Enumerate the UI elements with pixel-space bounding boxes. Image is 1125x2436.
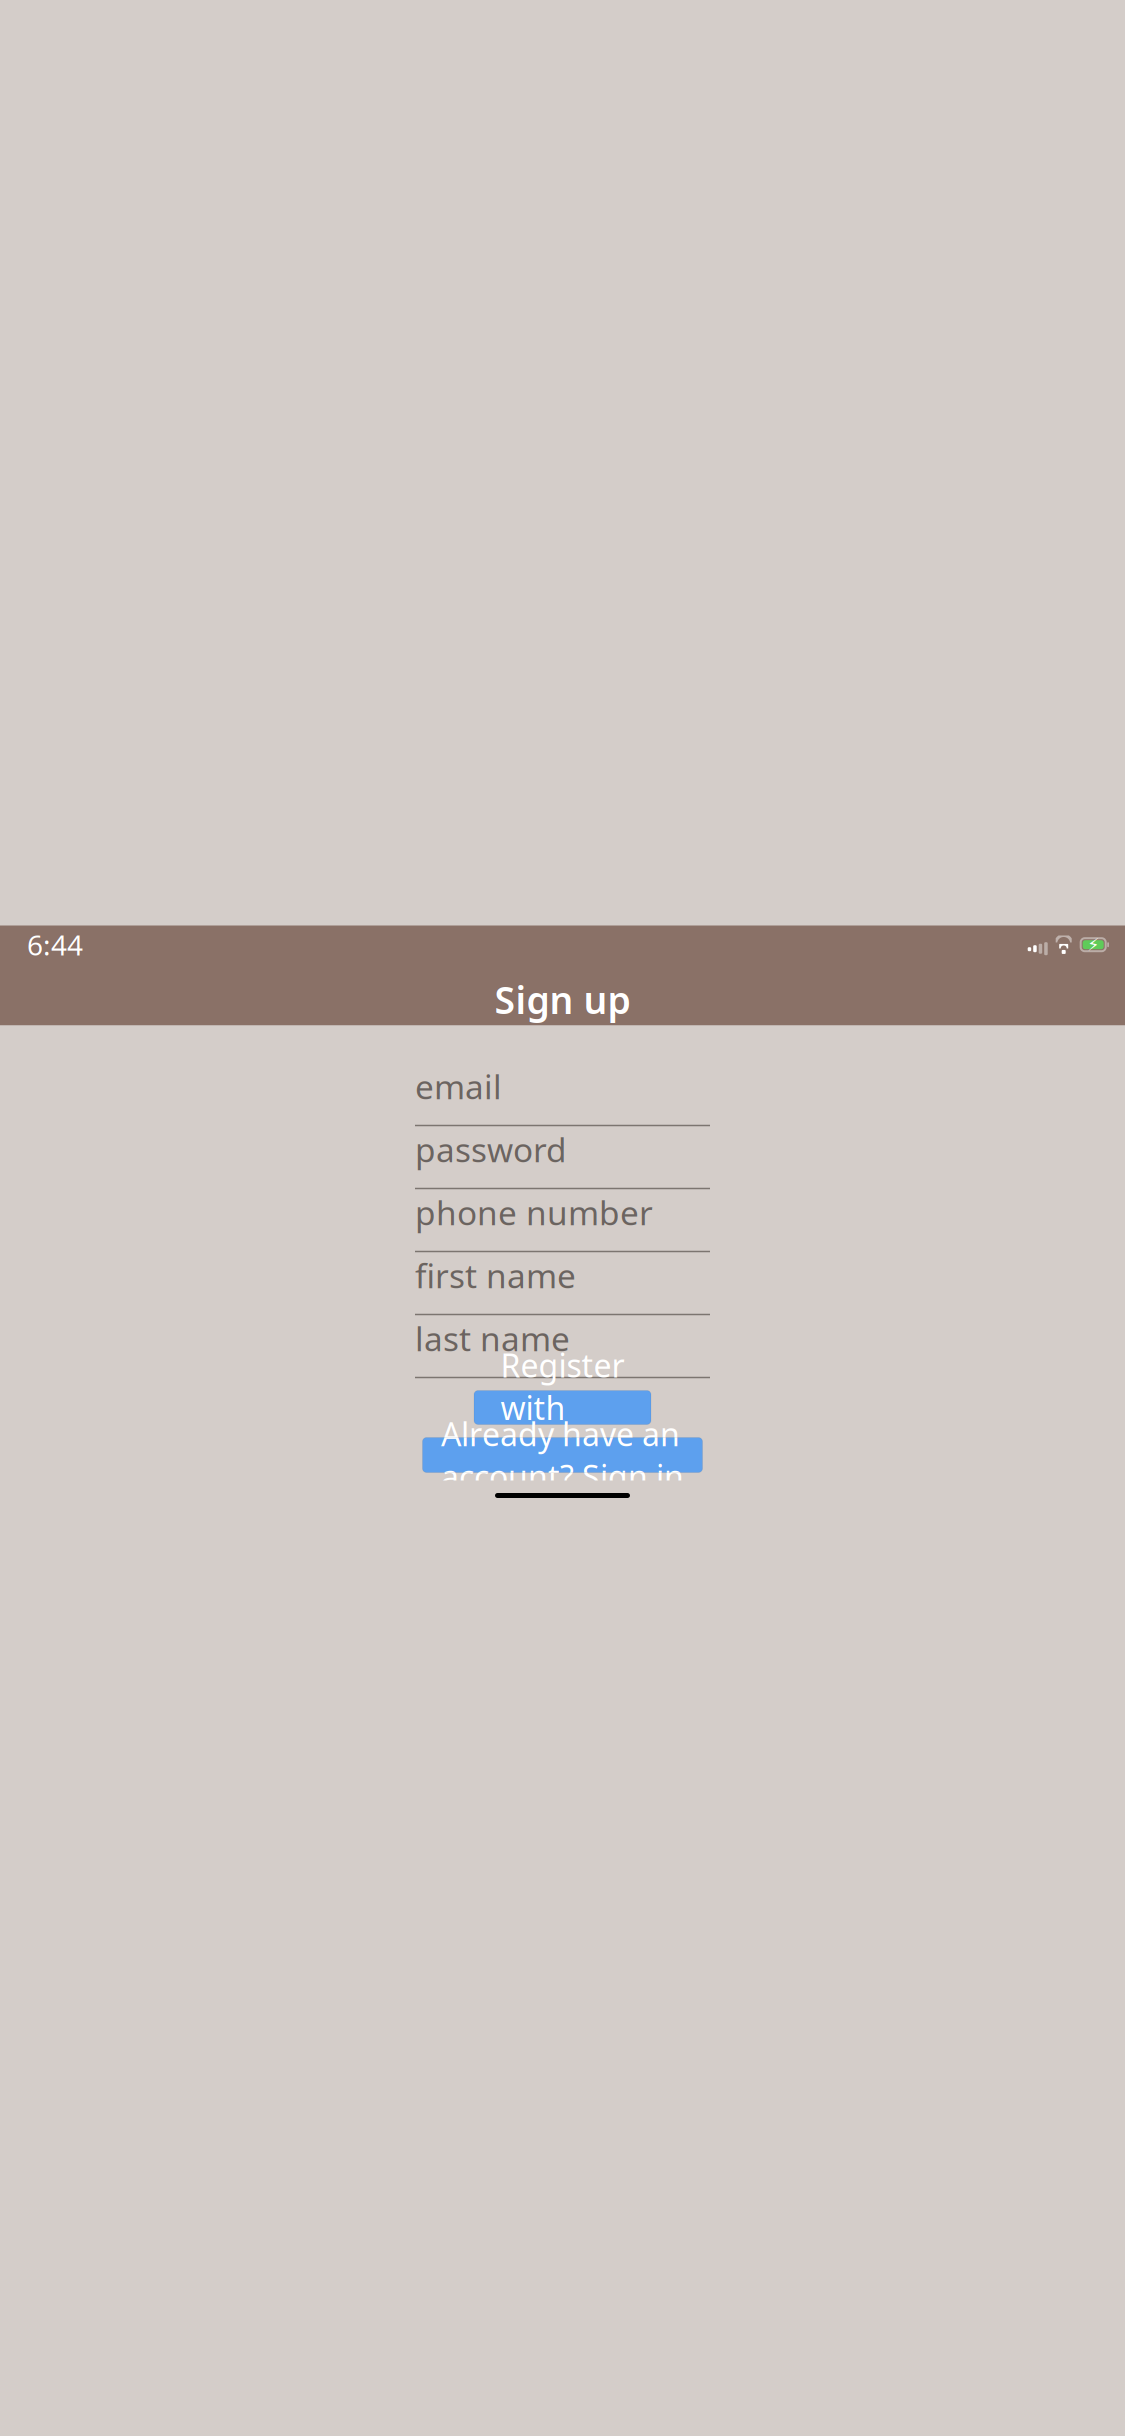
staticText: phone number [415,1190,653,1234]
button[interactable]: Already have an account? Sign in [422,1437,702,1472]
staticText: 6:44 [27,926,83,963]
staticText: password [415,1127,567,1171]
staticText: email [415,1064,502,1108]
staticText: Already have an account? Sign in [441,1412,684,1497]
staticText: last name [415,1316,570,1360]
staticText: Sign up [494,975,630,1024]
staticText: ⚡︎ [1087,935,1099,955]
staticText: Register with email [500,1344,624,1471]
button[interactable]: Register with email [474,1390,651,1424]
staticText: first name [415,1253,576,1297]
